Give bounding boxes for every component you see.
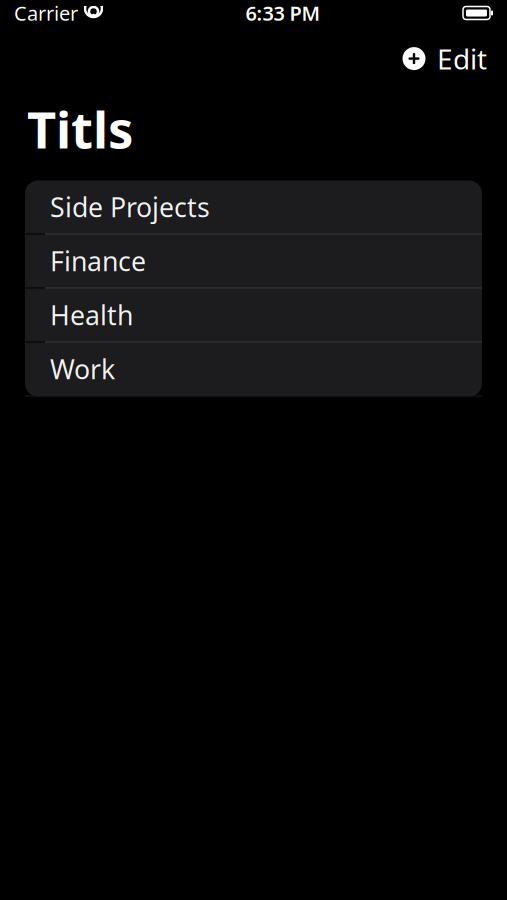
- button[interactable]: Health: [25, 288, 482, 342]
- staticText: Side Projects: [50, 189, 210, 225]
- staticText: Health: [50, 297, 133, 333]
- button[interactable]: Finance: [25, 234, 482, 288]
- staticText: 6:33 PM: [245, 0, 320, 26]
- staticText: Work: [50, 351, 115, 387]
- staticText: Edit: [437, 40, 487, 77]
- button[interactable]: Edit: [427, 36, 487, 81]
- staticText: Finance: [50, 243, 146, 279]
- button[interactable]: Side Projects: [25, 180, 482, 234]
- button[interactable]: Work: [25, 342, 482, 396]
- staticText: Titls: [27, 95, 133, 162]
- staticText: Carrier: [14, 0, 78, 26]
- button[interactable]: Add: [401, 46, 427, 72]
